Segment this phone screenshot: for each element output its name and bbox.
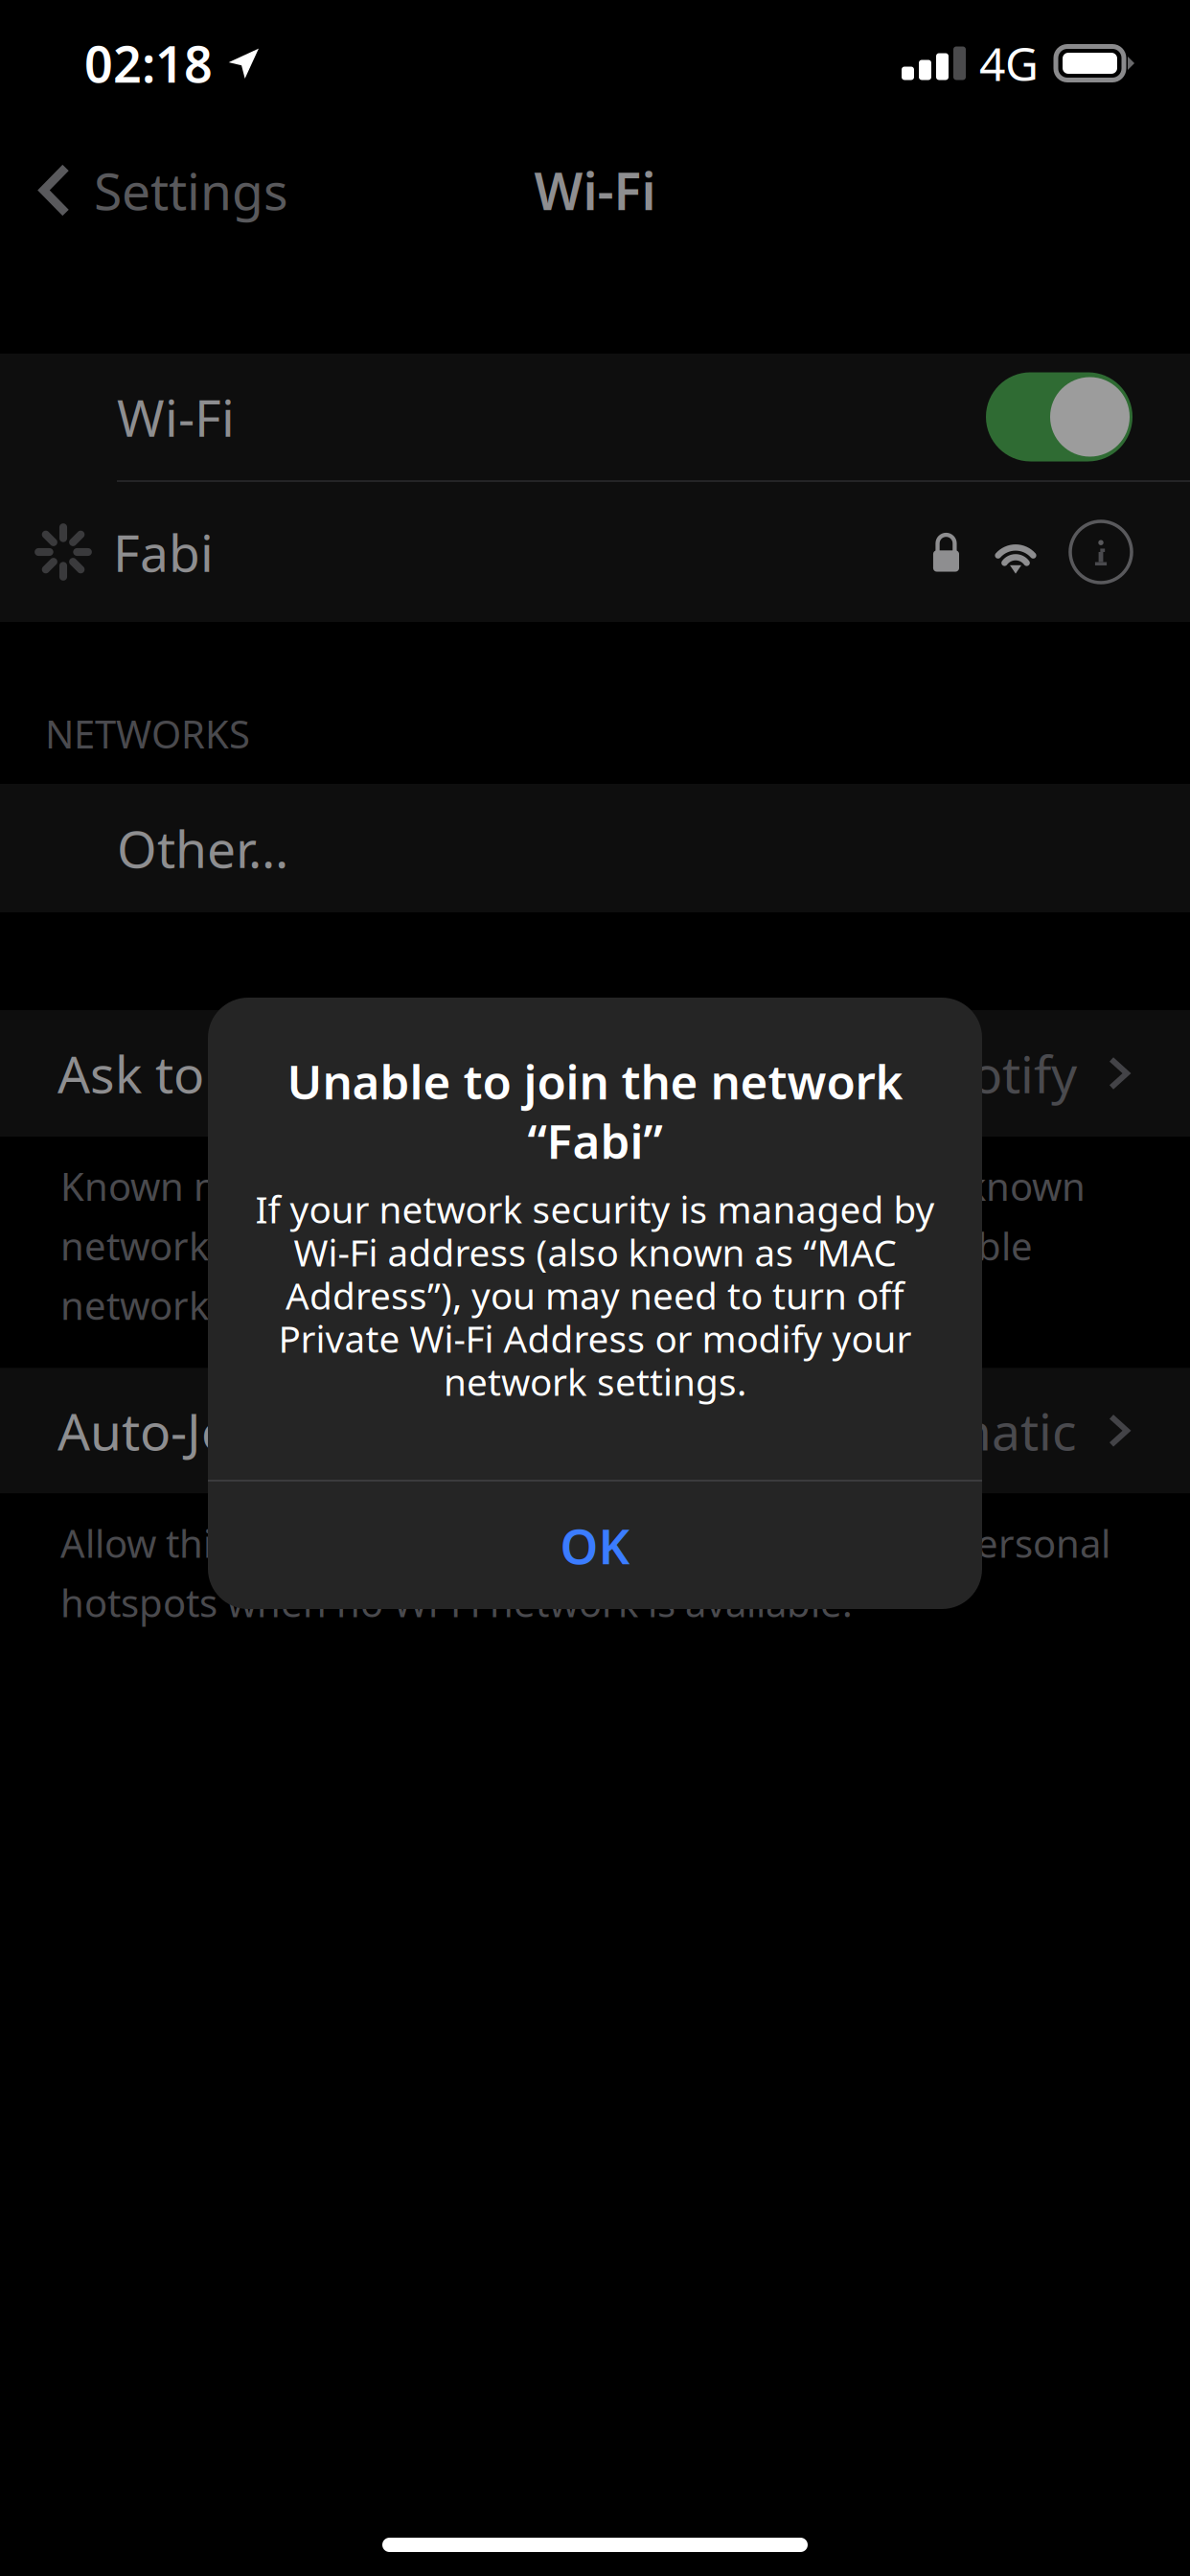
staticText: Allow this device to automatically disco…	[60, 1517, 1110, 1628]
staticText: Settings	[94, 156, 288, 224]
staticText: Wi-Fi	[117, 383, 235, 451]
staticText: OK	[560, 1513, 630, 1578]
staticText: Auto-Join Hotspot	[57, 1397, 483, 1465]
staticText: Wi-Fi	[534, 156, 656, 224]
staticText: 4G	[979, 33, 1039, 94]
button[interactable]: Other...	[0, 784, 1190, 912]
staticText: Other...	[117, 814, 288, 882]
staticText: If your network security is managed by	[255, 1184, 935, 1233]
staticText: network settings.	[444, 1357, 746, 1406]
staticText: Automatic	[831, 1397, 1077, 1465]
staticText: NETWORKS	[45, 708, 250, 759]
staticText: Wi-Fi address (also known as “MAC	[294, 1227, 896, 1277]
staticText: Known networks will be joined automatica…	[60, 1161, 1086, 1331]
button[interactable]: OK	[208, 1482, 982, 1609]
staticText: Unable to join the network	[287, 1050, 903, 1112]
staticText: Private Wi-Fi Address or modify your	[278, 1314, 912, 1363]
button[interactable]: Fabi	[0, 482, 1190, 622]
staticText: Notify	[932, 1039, 1077, 1107]
staticText: Address”), you may need to turn off	[286, 1271, 904, 1320]
button[interactable]: Settings	[0, 126, 311, 254]
button[interactable]: Wi-Fi	[0, 354, 1190, 480]
staticText: Fabi	[113, 518, 214, 586]
button[interactable]: Ask to Join Networks	[0, 1010, 1190, 1137]
staticText: “Fabi”	[527, 1109, 663, 1172]
staticText: Ask to Join Networks	[57, 1039, 551, 1107]
button[interactable]: Auto-Join Hotspot	[0, 1368, 1190, 1493]
staticText: 02:18	[84, 30, 213, 96]
